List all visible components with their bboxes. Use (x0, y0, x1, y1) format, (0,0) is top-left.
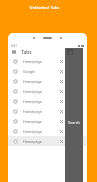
button[interactable]: Homepage (8, 106, 87, 116)
staticText: Homepage (23, 129, 42, 134)
staticText: Homepage (23, 139, 42, 144)
button[interactable]: Homepage (8, 96, 87, 106)
staticText: 9:41 (11, 44, 17, 48)
staticText: Homepage (23, 59, 42, 64)
staticText: Homepage (23, 89, 42, 94)
staticText: Google (23, 69, 36, 74)
staticText: Homepage (23, 99, 42, 104)
staticText: Homepage (23, 109, 42, 114)
staticText: Search (65, 120, 83, 125)
staticText: Tabs (21, 49, 32, 56)
button[interactable]: Homepage (8, 116, 87, 126)
button[interactable]: Google (8, 66, 87, 76)
button[interactable]: Homepage (8, 136, 87, 146)
button[interactable]: Homepage (8, 56, 87, 66)
staticText: Homepage (23, 79, 42, 84)
button[interactable]: Homepage (8, 126, 87, 136)
button[interactable]: Homepage (8, 76, 87, 86)
staticText: Unlimited Tabs (0, 5, 93, 11)
button[interactable]: Homepage (8, 86, 87, 96)
staticText: Homepage (23, 119, 42, 124)
